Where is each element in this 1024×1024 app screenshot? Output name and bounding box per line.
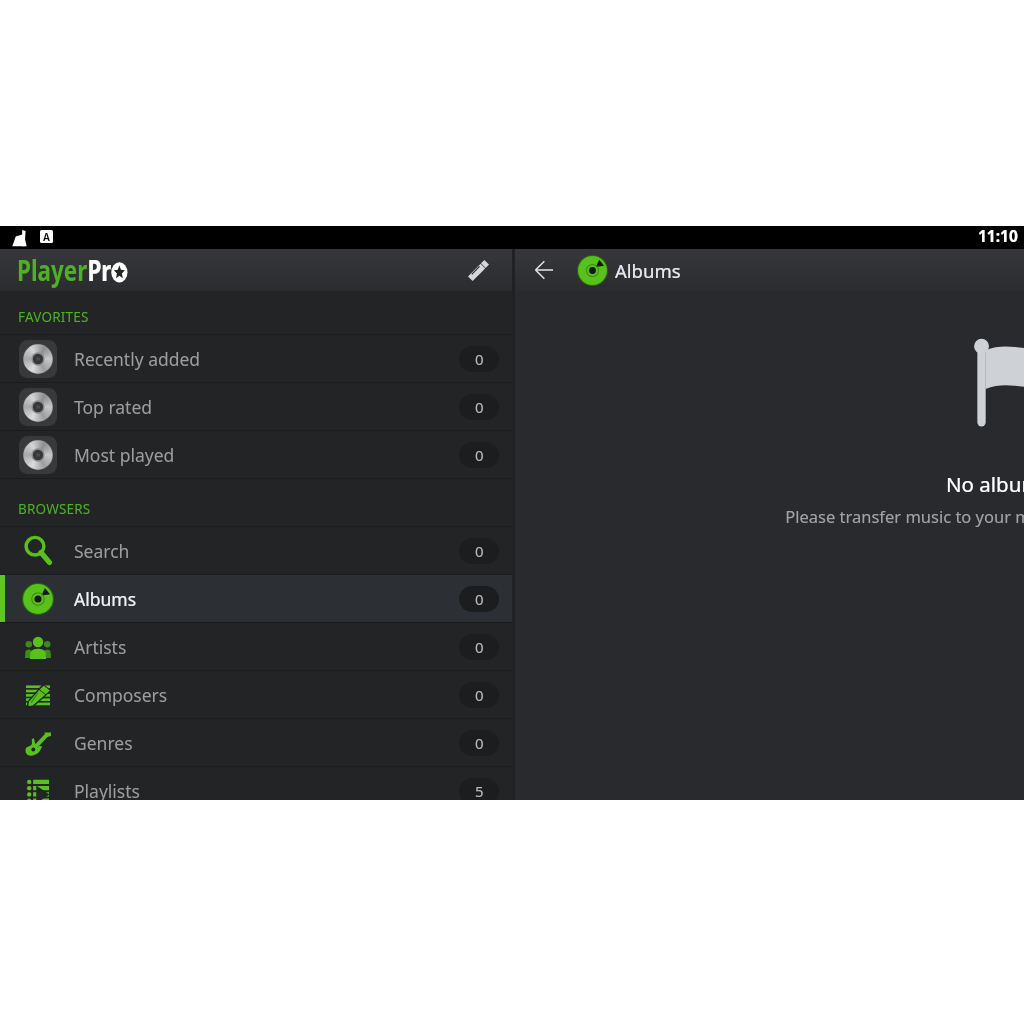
staticText: A (43, 230, 50, 243)
staticText: 0 (475, 445, 484, 465)
button[interactable]: Playlists (0, 767, 512, 800)
button[interactable]: Genres (0, 719, 512, 767)
staticText: Please transfer music to your memory car… (785, 505, 1024, 527)
staticText: 0 (475, 589, 484, 609)
staticText: 0 (475, 637, 484, 657)
staticText: 0 (475, 733, 484, 753)
staticText: Artists (74, 635, 127, 659)
staticText: Player (17, 251, 87, 289)
button[interactable]: Recently added (0, 335, 512, 383)
staticText: BROWSERS (18, 500, 91, 518)
button[interactable]: Most played (0, 431, 512, 479)
staticText: 0 (475, 349, 484, 369)
staticText: 11:10 (978, 225, 1018, 246)
staticText: 0 (475, 397, 484, 417)
button[interactable]: Composers (0, 671, 512, 719)
staticText: No albums (946, 470, 1024, 498)
staticText: Albums (74, 587, 137, 611)
button[interactable]: Albums (0, 575, 512, 623)
staticText: 0 (475, 541, 484, 561)
staticText: 5 (475, 781, 484, 800)
button[interactable]: Top rated (0, 383, 512, 431)
button[interactable]: Artists (0, 623, 512, 671)
staticText: FAVORITES (18, 308, 89, 326)
staticText: Composers (74, 683, 168, 707)
staticText: Most played (74, 443, 175, 467)
button[interactable]: Back (526, 252, 562, 288)
staticText: Search (74, 539, 130, 563)
button[interactable]: Search (0, 527, 512, 575)
staticText: Pr (87, 251, 111, 289)
staticText: Genres (74, 731, 133, 755)
staticText: Playlists (74, 779, 140, 800)
staticText: 0 (475, 685, 484, 705)
staticText: Top rated (74, 395, 153, 419)
button[interactable]: Edit (461, 253, 495, 287)
staticText: Albums (615, 258, 681, 283)
staticText: Recently added (74, 347, 201, 371)
